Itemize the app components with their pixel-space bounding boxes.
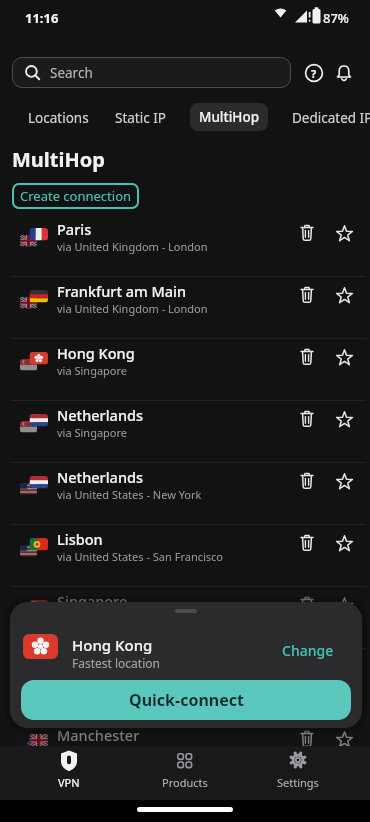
staticText: Hong Kong xyxy=(72,635,153,655)
staticText: 11:16 xyxy=(25,9,59,27)
button[interactable] xyxy=(331,344,357,370)
staticText: Search xyxy=(50,64,93,82)
button[interactable] xyxy=(294,726,320,752)
staticText: via Singapore xyxy=(57,425,128,440)
button[interactable]: Netherlands xyxy=(0,401,370,463)
button[interactable]: Hong Kong xyxy=(0,339,370,401)
button[interactable] xyxy=(331,406,357,432)
button[interactable]: Settings xyxy=(268,746,328,800)
button[interactable]: Netherlands xyxy=(0,463,370,525)
staticText: Manchester xyxy=(57,725,140,745)
button[interactable]: Singapore xyxy=(0,587,370,649)
staticText: 87% xyxy=(323,9,349,27)
staticText: Hong Kong xyxy=(57,343,135,363)
button[interactable] xyxy=(294,344,320,370)
staticText: Paris xyxy=(57,219,92,239)
staticText: Frankfurt am Main xyxy=(57,281,187,301)
staticText: via United States - New York xyxy=(57,487,202,502)
button[interactable]: Paris xyxy=(0,215,370,277)
button[interactable] xyxy=(294,592,320,618)
button[interactable] xyxy=(331,468,357,494)
button[interactable] xyxy=(294,468,320,494)
staticText: Settings xyxy=(277,775,319,790)
button[interactable] xyxy=(294,282,320,308)
staticText: MultiHop xyxy=(12,146,105,173)
staticText: Create connection xyxy=(20,187,132,205)
staticText: VPN xyxy=(58,775,80,790)
staticText: via United Kingdom - London xyxy=(57,301,208,316)
button[interactable] xyxy=(331,282,357,308)
button[interactable] xyxy=(294,220,320,246)
button[interactable] xyxy=(331,592,357,618)
button[interactable]: Create connection xyxy=(12,183,139,209)
staticText: Products xyxy=(162,775,208,790)
staticText: Netherlands xyxy=(57,467,144,487)
button[interactable]: VPN xyxy=(39,746,99,800)
button[interactable]: Search xyxy=(12,57,291,88)
button[interactable] xyxy=(331,726,357,752)
staticText: Quick-connect xyxy=(129,689,244,711)
button[interactable]: Static IP xyxy=(115,109,166,127)
button[interactable]: Lisbon xyxy=(0,525,370,587)
button[interactable]: Dedicated IP xyxy=(292,109,370,127)
button[interactable]: Manchester xyxy=(0,721,370,783)
button[interactable] xyxy=(332,61,356,85)
button[interactable]: Frankfurt am Main xyxy=(0,277,370,339)
staticText: MultiHop xyxy=(199,108,260,126)
button[interactable]: Products xyxy=(155,746,215,800)
staticText: via United States - San Francisco xyxy=(57,549,224,564)
button[interactable] xyxy=(331,530,357,556)
staticText: Singapore xyxy=(57,591,128,611)
button[interactable] xyxy=(294,406,320,432)
button[interactable]: ? xyxy=(302,61,326,85)
button[interactable] xyxy=(331,220,357,246)
button[interactable]: Change xyxy=(282,641,334,660)
button[interactable]: Quick-connect xyxy=(21,680,351,720)
staticText: via United Kingdom - London xyxy=(57,239,208,254)
button[interactable]: Locations xyxy=(28,109,89,127)
staticText: ? xyxy=(311,66,317,81)
staticText: Fastest location xyxy=(72,655,160,671)
staticText: Netherlands xyxy=(57,405,144,425)
button[interactable] xyxy=(294,530,320,556)
staticText: via Singapore xyxy=(57,363,128,378)
staticText: Lisbon xyxy=(57,529,103,549)
button[interactable]: MultiHop xyxy=(190,103,268,131)
